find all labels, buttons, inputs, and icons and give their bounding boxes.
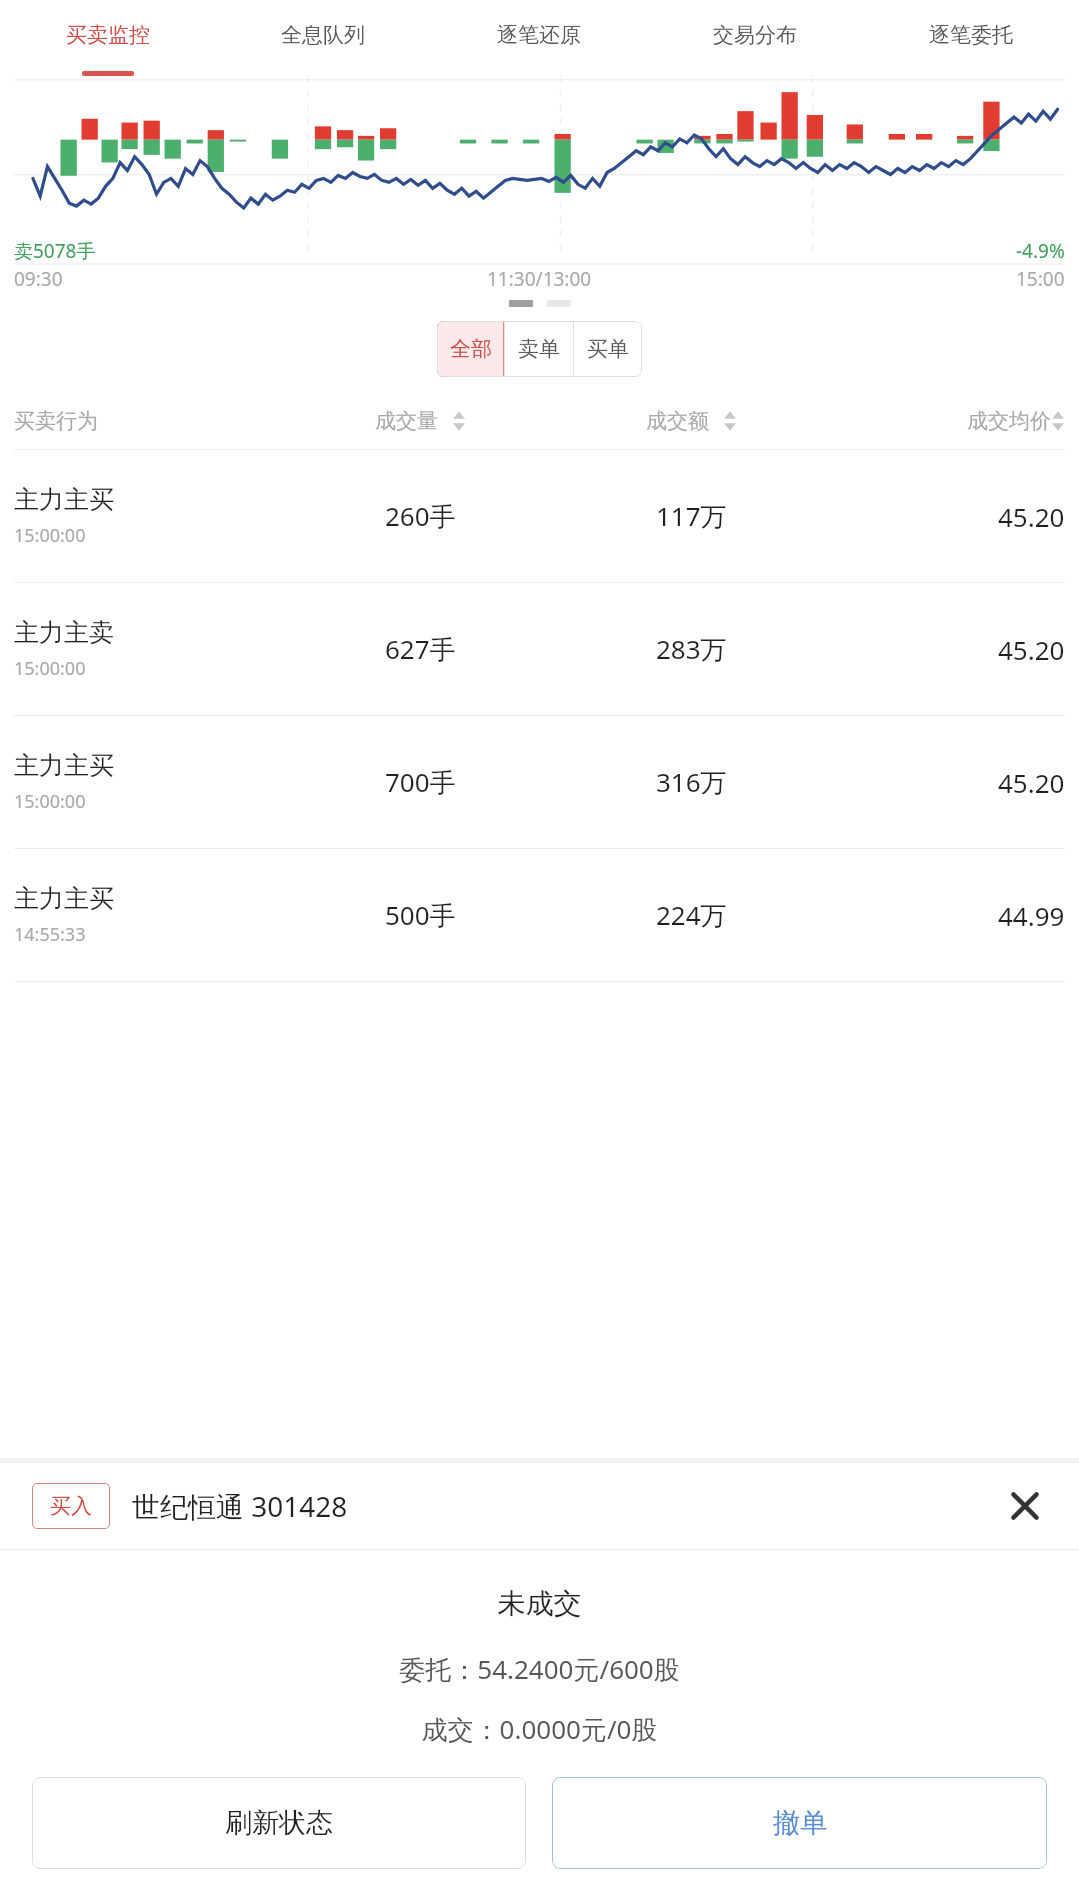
staticText: 成交：0.0000元/0股: [0, 1711, 1079, 1747]
staticText: 买卖行为: [14, 408, 98, 434]
button[interactable]: 关闭: [1003, 1484, 1047, 1528]
staticText: 45.20: [998, 765, 1065, 800]
staticText: 44.99: [998, 898, 1065, 933]
staticText: 世纪恒通 301428: [132, 1487, 348, 1525]
button[interactable]: 刷新状态: [32, 1777, 526, 1869]
button[interactable]: 交易分布: [647, 0, 863, 70]
staticText: 逐笔委托: [929, 22, 1013, 48]
staticText: 买卖监控: [66, 22, 150, 48]
staticText: 成交额: [646, 408, 709, 434]
staticText: 全部: [450, 336, 492, 362]
staticText: 500手: [385, 897, 456, 933]
button[interactable]: 主力主买: [0, 716, 1079, 849]
staticText: 主力主买: [14, 883, 114, 914]
button[interactable]: 逐笔还原: [431, 0, 647, 70]
staticText: 逐笔还原: [497, 22, 581, 48]
staticText: 260手: [385, 498, 456, 534]
staticText: 627手: [385, 631, 456, 667]
staticText: 09:30: [14, 266, 63, 292]
staticText: 15:00:00: [14, 523, 86, 548]
staticText: 15:00:00: [14, 789, 86, 814]
staticText: 主力主买: [14, 750, 114, 781]
staticText: 主力主买: [14, 484, 114, 515]
staticText: 45.20: [998, 499, 1065, 534]
staticText: 283万: [656, 631, 727, 667]
staticText: 700手: [385, 764, 456, 800]
staticText: 交易分布: [713, 22, 797, 48]
staticText: 15:00: [1016, 266, 1065, 292]
staticText: 卖单: [518, 336, 560, 362]
button[interactable]: 卖单: [505, 321, 573, 377]
button[interactable]: 全部: [437, 321, 504, 377]
staticText: 未成交: [0, 1586, 1079, 1621]
staticText: 卖5078手: [14, 238, 96, 264]
staticText: 成交量: [375, 408, 438, 434]
staticText: -4.9%: [1016, 238, 1065, 264]
button[interactable]: 主力主买: [0, 849, 1079, 982]
button[interactable]: 撤单: [552, 1777, 1047, 1869]
staticText: 买入: [50, 1493, 92, 1519]
staticText: 14:55:33: [14, 922, 86, 947]
staticText: 全息队列: [281, 22, 365, 48]
staticText: 45.20: [998, 632, 1065, 667]
staticText: 委托：54.2400元/600股: [0, 1651, 1079, 1687]
staticText: 刷新状态: [225, 1806, 333, 1840]
button[interactable]: 主力主卖: [0, 583, 1079, 716]
staticText: 316万: [656, 764, 727, 800]
button[interactable]: 主力主买: [0, 450, 1079, 583]
staticText: 15:00:00: [14, 656, 86, 681]
staticText: 224万: [656, 897, 727, 933]
staticText: 主力主卖: [14, 617, 114, 648]
button[interactable]: 全息队列: [215, 0, 431, 70]
staticText: 成交均价: [967, 408, 1051, 434]
staticText: 117万: [656, 498, 727, 534]
staticText: 撤单: [773, 1806, 827, 1840]
button[interactable]: 买单: [574, 321, 642, 377]
button[interactable]: 买卖监控: [0, 0, 215, 70]
button[interactable]: 逐笔委托: [863, 0, 1079, 70]
staticText: 买单: [587, 336, 629, 362]
staticText: 11:30/13:00: [487, 266, 592, 292]
